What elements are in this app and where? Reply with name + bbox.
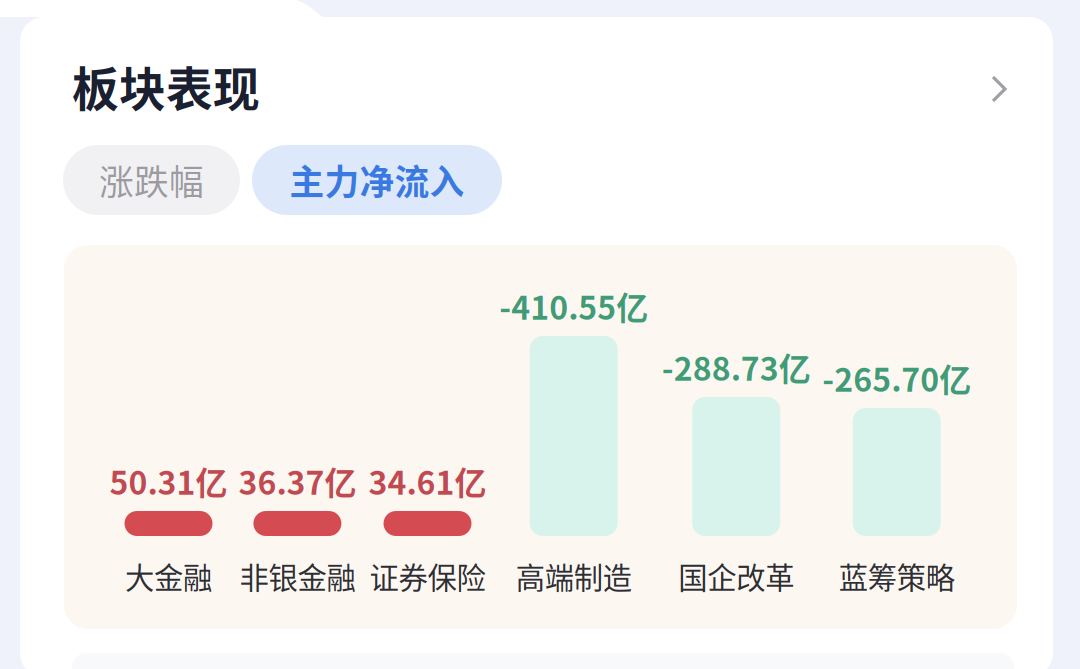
staticText: 国企改革 [678, 555, 794, 597]
staticText: 50.31亿 [109, 458, 227, 504]
button[interactable]: 查看全部板块表现 [966, 48, 1042, 124]
staticText: -265.70亿 [822, 355, 971, 401]
staticText: 板块表现 [72, 52, 260, 120]
button[interactable]: 涨跌幅 [63, 145, 240, 215]
staticText: -288.73亿 [662, 344, 811, 390]
staticText: 36.37亿 [238, 458, 356, 504]
staticText: -410.55亿 [499, 283, 648, 329]
staticText: 证券保险 [369, 555, 485, 597]
staticText: 34.61亿 [368, 458, 486, 504]
staticText: 主力净流入 [289, 155, 464, 205]
staticText: 涨跌幅 [99, 155, 204, 205]
staticText: 大金融 [125, 555, 212, 597]
staticText: 非银金融 [239, 555, 355, 597]
button[interactable]: 主力净流入 [252, 145, 502, 215]
staticText: 蓝筹策略 [839, 555, 955, 597]
staticText: 高端制造 [516, 555, 632, 597]
